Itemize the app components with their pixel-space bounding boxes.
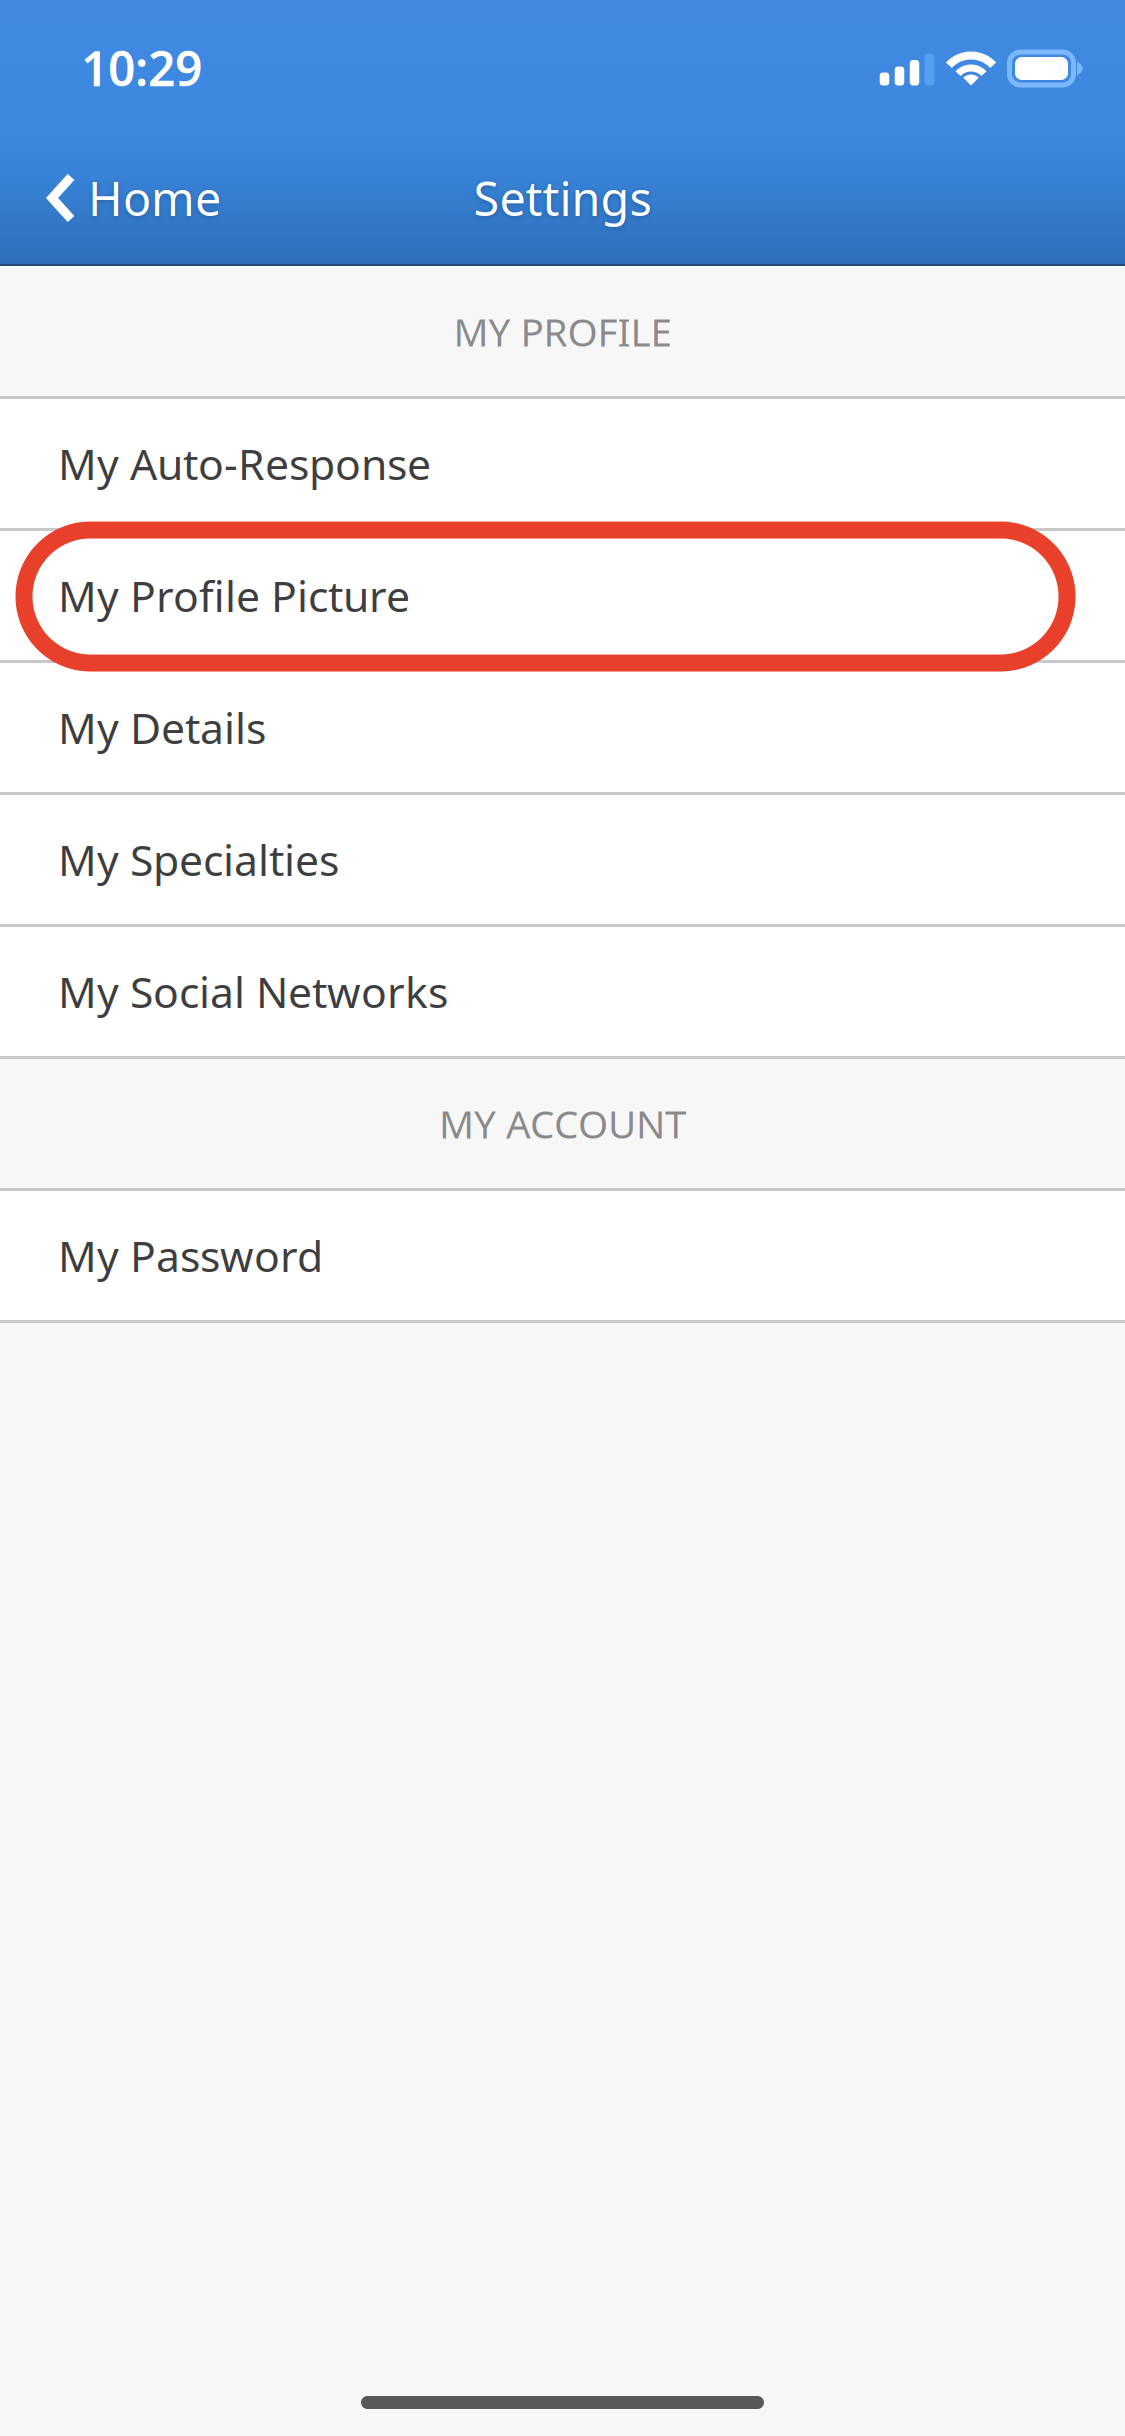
- staticText: My Profile Picture: [58, 567, 410, 624]
- button[interactable]: My Password: [0, 1191, 1125, 1320]
- staticText: My Social Networks: [58, 963, 448, 1020]
- button[interactable]: My Auto-Response: [0, 399, 1125, 528]
- button[interactable]: My Specialties: [0, 795, 1125, 924]
- staticText: MY ACCOUNT: [439, 1098, 686, 1149]
- button[interactable]: My Details: [0, 663, 1125, 792]
- button[interactable]: Home: [0, 131, 245, 264]
- staticText: Settings: [473, 167, 651, 229]
- staticText: Home: [88, 167, 221, 229]
- staticText: MY PROFILE: [453, 306, 671, 357]
- staticText: My Specialties: [58, 831, 339, 888]
- staticText: My Password: [58, 1227, 323, 1284]
- button[interactable]: My Profile Picture: [0, 531, 1125, 660]
- button[interactable]: My Social Networks: [0, 927, 1125, 1056]
- staticText: My Auto-Response: [58, 435, 431, 492]
- staticText: My Details: [58, 699, 266, 756]
- staticText: 10:29: [81, 36, 202, 99]
